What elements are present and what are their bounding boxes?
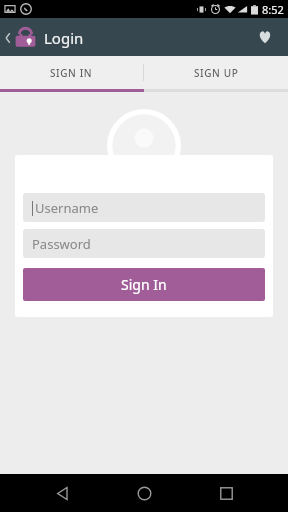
button[interactable]: Back (42, 474, 82, 512)
staticText: SIGN IN (50, 66, 93, 80)
button[interactable]: Back (4, 26, 84, 49)
button[interactable]: Home (124, 474, 164, 512)
button[interactable]: Favorite (252, 24, 278, 50)
button[interactable]: Recent apps (206, 474, 246, 512)
staticText: SIGN UP (194, 66, 239, 80)
button[interactable]: Password (23, 229, 265, 258)
button[interactable]: Username (23, 193, 265, 222)
staticText: Password (32, 235, 91, 253)
button[interactable]: SIGN IN (0, 56, 143, 89)
button[interactable]: Sign In (23, 268, 265, 301)
staticText: Sign In (121, 275, 167, 294)
staticText: Username (35, 199, 99, 217)
staticText: 8:52 (262, 2, 284, 17)
button[interactable]: SIGN UP (144, 56, 288, 89)
staticText: Login (44, 28, 84, 48)
